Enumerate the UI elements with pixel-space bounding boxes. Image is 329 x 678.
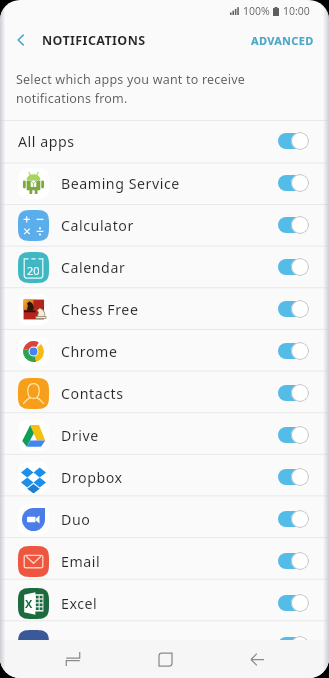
staticText: Calendar [61,258,126,277]
staticText: All apps [18,132,75,151]
staticText: Chrome [61,342,118,361]
staticText: Excel [61,594,98,613]
button[interactable]: Chrome [0,330,329,372]
button[interactable]: Back [0,22,42,58]
staticText: Beaming Service [61,174,180,193]
staticText: Duo [61,510,91,529]
button[interactable]: 20 [0,246,329,288]
staticText: Select which apps you want to receive no… [16,71,245,107]
staticText: 100% [243,4,270,18]
staticText: Drive [61,426,99,445]
staticText: 10:00 [283,4,310,18]
button[interactable]: X [0,582,329,624]
staticText: Chess Free [61,300,139,319]
staticText: 20 [27,263,40,278]
button[interactable]: Contacts [0,372,329,414]
button[interactable]: Drive [0,414,329,456]
button[interactable]: Dropbox [0,456,329,498]
staticText: Calculator [61,216,134,235]
staticText: Contacts [61,384,124,403]
button[interactable]: Back [229,640,285,678]
staticText: Email [61,552,101,571]
button[interactable]: Home [137,640,193,678]
button[interactable]: Email [0,540,329,582]
button[interactable]: All apps [0,120,329,162]
button[interactable]: ADVANCED [239,22,329,58]
button[interactable]: f [0,624,329,640]
staticText: Dropbox [61,468,123,487]
staticText: NOTIFICATIONS [42,32,146,49]
button[interactable]: Chess Free [0,288,329,330]
button[interactable]: Duo [0,498,329,540]
button[interactable]: Calculator [0,204,329,246]
staticText: X [25,596,33,611]
button[interactable]: Beaming Service [0,162,329,204]
staticText: ADVANCED [251,33,314,48]
button[interactable]: Recent apps [45,640,101,678]
